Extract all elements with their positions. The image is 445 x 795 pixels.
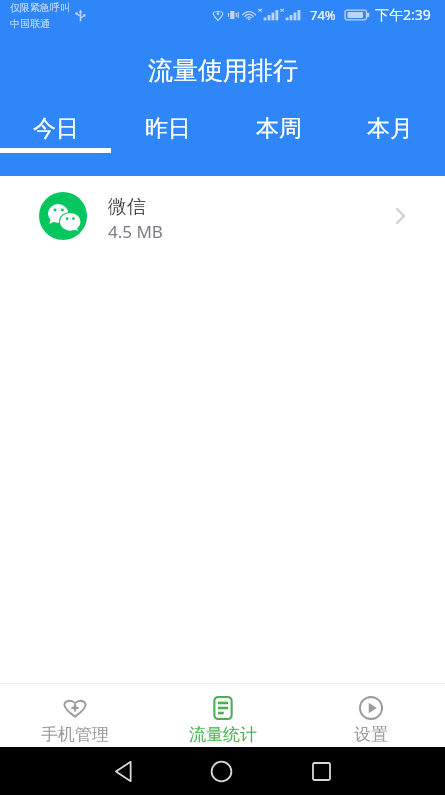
staticText: 本周 <box>256 114 302 143</box>
staticText: 中国联通 <box>10 17 50 30</box>
button[interactable]: Back <box>101 749 146 794</box>
staticText: 昨日 <box>145 114 191 143</box>
button[interactable]: 微信 <box>0 176 445 256</box>
staticText: 流量统计 <box>189 724 257 745</box>
button[interactable]: Recents <box>299 749 344 794</box>
button[interactable]: Data statistics <box>149 684 297 747</box>
button[interactable]: Phone manager <box>0 684 149 747</box>
staticText: 流量使用排行 <box>148 55 298 86</box>
button[interactable]: 本月 <box>334 110 445 176</box>
staticText: 仅限紧急呼叫 <box>10 1 70 14</box>
button[interactable]: Home <box>199 749 244 794</box>
staticText: 4.5 MB <box>108 220 163 243</box>
button[interactable]: Settings <box>297 684 445 747</box>
staticText: 下午2:39 <box>375 5 431 24</box>
staticText: 本月 <box>367 114 413 143</box>
staticText: 今日 <box>33 114 79 143</box>
button[interactable]: 昨日 <box>112 110 223 176</box>
staticText: 74% <box>310 6 336 24</box>
button[interactable]: 本周 <box>223 110 334 176</box>
staticText: 手机管理 <box>41 724 109 745</box>
button[interactable]: 今日 <box>0 110 112 176</box>
staticText: 设置 <box>354 724 388 745</box>
staticText: 微信 <box>108 195 146 219</box>
